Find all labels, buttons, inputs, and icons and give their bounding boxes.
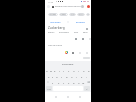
button[interactable]: Notic (69, 13, 76, 16)
button[interactable]: Vídeos (59, 13, 68, 16)
staticText: p (88, 69, 90, 72)
staticText: l (86, 75, 87, 78)
staticText: i (78, 69, 79, 72)
button[interactable]: Record (87, 5, 90, 8)
staticText: x (58, 81, 60, 84)
button[interactable]: l (84, 73, 89, 79)
staticText: hijos (74, 31, 79, 34)
staticText: d (56, 75, 58, 78)
button[interactable]: m (81, 79, 86, 85)
button[interactable]: Búsqued (76, 21, 85, 24)
staticText: ⌫ (87, 81, 91, 84)
staticText: k (81, 75, 83, 78)
button[interactable]: Reload (81, 5, 84, 8)
staticText: patrimonio (59, 31, 69, 34)
staticText: t (63, 69, 64, 72)
button[interactable]: c (61, 79, 66, 85)
staticText: Libros (78, 13, 84, 16)
button[interactable]: Shift (45, 79, 50, 85)
staticText: 11:45 (48, 1, 54, 4)
staticText: v (68, 81, 70, 84)
button[interactable]: w (49, 67, 53, 73)
staticText: c (63, 81, 65, 84)
staticText: ?123 (47, 88, 51, 90)
button[interactable]: u (71, 67, 76, 73)
button[interactable]: a (47, 73, 51, 79)
staticText: edad (83, 31, 88, 34)
button[interactable]: g (64, 73, 69, 79)
staticText: o (83, 69, 85, 72)
button[interactable]: j (74, 73, 79, 79)
staticText: g (66, 75, 68, 78)
button[interactable]: q (45, 67, 49, 73)
staticText: z (52, 81, 54, 84)
staticText: b (73, 81, 75, 84)
staticText: Imágen (49, 13, 57, 16)
staticText: j (76, 75, 77, 78)
staticText: google.com/search?q=Zuc (55, 5, 81, 8)
button[interactable]: Tab switcher (47, 5, 50, 8)
button[interactable]: i (76, 67, 81, 73)
button[interactable]: s (51, 73, 55, 79)
staticText: h (71, 75, 73, 78)
button[interactable]: z (50, 79, 56, 85)
staticText: ⇧ (47, 81, 49, 84)
staticText: Notic (70, 13, 75, 16)
button[interactable]: o (81, 67, 86, 73)
staticText: m (82, 81, 85, 84)
button[interactable]: b (71, 79, 76, 85)
button[interactable]: e (53, 67, 57, 73)
button[interactable]: k (79, 73, 84, 79)
button[interactable]: ↵ (84, 86, 90, 91)
staticText: Zuckerberg (62, 63, 74, 66)
button[interactable]: Libros (77, 13, 85, 16)
button[interactable]: Backspace (86, 79, 91, 85)
button[interactable]: y (66, 67, 71, 73)
staticText: Tras de suerte (48, 44, 62, 47)
staticText: w (50, 69, 52, 72)
button[interactable]: r (57, 67, 61, 73)
staticText: ↵ (86, 88, 88, 90)
staticText: Búsqued (76, 21, 85, 24)
button[interactable]: h (69, 73, 74, 79)
button[interactable]: ?123 (46, 86, 52, 91)
button[interactable]: v (66, 79, 71, 85)
staticText: Zuckerberg (48, 26, 65, 30)
staticText: Vídeos (60, 13, 67, 16)
staticText: e (54, 69, 56, 72)
staticText: n (78, 81, 80, 84)
button[interactable]: f (59, 73, 64, 79)
staticText: a (48, 75, 50, 78)
button[interactable]: d (55, 73, 59, 79)
button[interactable]: p (86, 67, 91, 73)
staticText: y (68, 69, 70, 72)
button[interactable]: x (56, 79, 61, 85)
button[interactable]: Imágen (48, 13, 58, 16)
staticText: f (61, 75, 62, 78)
staticText: Herramien (50, 21, 61, 24)
staticText: u (73, 69, 75, 72)
staticText: M (87, 13, 89, 16)
staticText: r (59, 69, 60, 72)
staticText: esposa (48, 31, 55, 34)
button[interactable]: n (76, 79, 81, 85)
staticText: q (46, 69, 48, 72)
button[interactable]: t (61, 67, 66, 73)
button[interactable]: M (86, 13, 90, 16)
staticText: s (52, 75, 54, 78)
button[interactable]: Herramien (50, 21, 61, 24)
